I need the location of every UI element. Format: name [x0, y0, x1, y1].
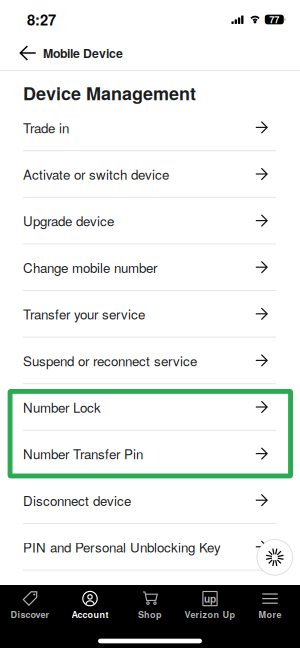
- staticText: Change mobile number: [23, 258, 157, 277]
- staticText: More: [258, 608, 281, 621]
- staticText: Verizon Up: [184, 608, 235, 621]
- button[interactable]: Back: [13, 36, 43, 70]
- button[interactable]: Number Lock: [0, 384, 300, 431]
- button[interactable]: Number Transfer Pin: [0, 431, 300, 477]
- button[interactable]: Upgrade device: [0, 198, 300, 244]
- staticText: 77: [269, 13, 279, 26]
- staticText: 8:27: [27, 9, 56, 30]
- button[interactable]: Activate or switch device: [0, 151, 300, 198]
- button[interactable]: up: [180, 585, 240, 634]
- staticText: Activate or switch device: [23, 164, 169, 184]
- staticText: Discover: [10, 608, 49, 621]
- button[interactable]: Discover: [0, 585, 60, 634]
- staticText: Disconnect device: [23, 491, 131, 510]
- button[interactable]: Shop: [120, 585, 180, 634]
- button[interactable]: Assistant: [256, 539, 293, 576]
- staticText: Mobile Device: [43, 44, 123, 62]
- staticText: Device Management: [23, 80, 196, 106]
- button[interactable]: Change mobile number: [0, 244, 300, 291]
- staticText: Account: [71, 608, 108, 621]
- staticText: Number Transfer Pin: [23, 444, 143, 463]
- staticText: Suspend or reconnect service: [23, 351, 197, 370]
- button[interactable]: Disconnect device: [0, 477, 300, 524]
- staticText: up: [204, 591, 216, 606]
- button[interactable]: Account: [60, 585, 120, 634]
- button[interactable]: Suspend or reconnect service: [0, 338, 300, 384]
- staticText: Upgrade device: [23, 211, 114, 230]
- button[interactable]: Trade in: [0, 105, 300, 151]
- staticText: Number Lock: [23, 397, 101, 417]
- button[interactable]: PIN and Personal Unblocking Key: [0, 524, 300, 571]
- button[interactable]: Transfer your service: [0, 291, 300, 338]
- staticText: Transfer your service: [23, 304, 145, 323]
- staticText: Shop: [138, 608, 162, 621]
- staticText: Trade in: [23, 118, 69, 137]
- button[interactable]: More: [240, 585, 300, 634]
- staticText: PIN and Personal Unblocking Key: [23, 537, 221, 556]
